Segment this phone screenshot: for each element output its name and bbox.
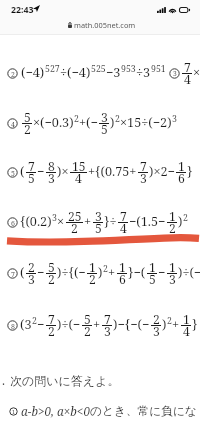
staticText: −: [37, 162, 45, 179]
staticText: 4: [184, 71, 191, 88]
staticText: 5: [95, 220, 102, 237]
staticText: 3: [153, 323, 160, 340]
staticText: 1: [119, 259, 126, 276]
staticText: 5: [28, 170, 35, 187]
staticText: }÷: [104, 212, 117, 229]
staticText: ): [98, 263, 103, 280]
staticText: 8: [11, 321, 15, 331]
staticText: 1: [12, 408, 16, 416]
staticText: 6: [119, 271, 126, 288]
staticText: )÷(−: [178, 263, 200, 280]
staticText: 5: [11, 168, 15, 178]
staticText: ×: [193, 63, 200, 80]
staticText: )÷(−: [57, 315, 81, 332]
staticText: 3: [48, 170, 55, 187]
staticText: 7: [104, 311, 111, 328]
staticText: 7: [11, 269, 15, 279]
staticText: ): [178, 212, 183, 229]
staticText: (−4): [21, 63, 45, 80]
staticText: 2: [74, 113, 79, 125]
button[interactable]: math.005net.com: [0, 17, 200, 34]
staticText: −: [37, 315, 45, 332]
staticText: 5: [24, 109, 31, 126]
staticText: 1: [169, 208, 176, 225]
staticText: 4: [75, 170, 82, 187]
staticText: 2: [48, 271, 55, 288]
staticText: +{(0.75+: [88, 162, 137, 179]
staticText: 1: [169, 259, 176, 276]
staticText: 3: [101, 109, 108, 126]
staticText: +: [172, 315, 180, 332]
staticText: )×: [57, 162, 69, 179]
staticText: −(1.5−: [129, 212, 166, 229]
staticText: 3: [140, 170, 147, 187]
staticText: 1: [89, 259, 96, 276]
staticText: +(−: [79, 113, 98, 130]
staticText: 2: [103, 263, 108, 275]
staticText: ×(−0.3): [33, 113, 74, 130]
staticText: 5: [84, 311, 91, 328]
staticText: 2: [24, 121, 31, 138]
staticText: ÷(−4): [60, 63, 91, 80]
staticText: 1: [183, 311, 190, 328]
staticText: 1: [149, 259, 156, 276]
staticText: 7: [120, 208, 127, 225]
staticText: 2: [32, 315, 37, 327]
staticText: −: [37, 263, 45, 280]
staticText: 6: [178, 170, 185, 187]
staticText: )×2−: [149, 162, 175, 179]
staticText: a−b>0, a×b<0: [21, 403, 90, 419]
staticText: −: [158, 263, 166, 280]
staticText: ): [110, 113, 115, 130]
staticText: ×: [57, 212, 65, 229]
staticText: 3: [172, 113, 177, 125]
staticText: 3: [95, 208, 102, 225]
staticText: 2: [115, 113, 120, 125]
staticText: 525: [91, 63, 106, 75]
staticText: (3: [20, 315, 32, 332]
staticText: +: [93, 315, 101, 332]
staticText: 2: [153, 311, 160, 328]
staticText: 4: [183, 323, 190, 340]
staticText: 3: [104, 323, 111, 340]
staticText: math.005net.com: [74, 20, 136, 30]
staticText: }−(: [128, 263, 146, 280]
staticText: 953: [121, 63, 136, 75]
staticText: 2: [84, 323, 91, 340]
staticText: のとき、常に負にな: [90, 404, 197, 419]
staticText: 1: [178, 158, 185, 175]
staticText: 5: [149, 271, 156, 288]
staticText: +: [108, 263, 116, 280]
staticText: 22:43: [11, 4, 34, 16]
staticText: 2: [11, 69, 15, 79]
staticText: 6: [11, 218, 15, 228]
staticText: −3: [106, 63, 121, 80]
staticText: 2: [71, 220, 78, 237]
staticText: 7: [184, 59, 191, 76]
other: Location: [33, 5, 40, 12]
staticText: {(0.2): [20, 212, 52, 229]
staticText: ×15÷(−2): [120, 113, 172, 130]
staticText: )÷{(−: [57, 263, 86, 280]
staticText: 3: [28, 271, 35, 288]
staticText: }: [192, 315, 198, 332]
staticText: 2: [183, 212, 188, 224]
staticText: 5: [48, 259, 55, 276]
staticText: 8: [48, 158, 55, 175]
staticText: (: [20, 162, 25, 179]
staticText: 2: [89, 271, 96, 288]
staticText: ): [162, 315, 167, 332]
staticText: 527: [45, 63, 60, 75]
staticText: ÷3: [136, 63, 151, 80]
staticText: 2: [167, 315, 172, 327]
staticText: 3: [169, 271, 176, 288]
staticText: .: [2, 372, 6, 388]
staticText: 951: [151, 63, 166, 75]
staticText: +: [84, 212, 92, 229]
staticText: 2: [48, 323, 55, 340]
staticText: 4: [120, 220, 127, 237]
staticText: }: [187, 162, 193, 179]
staticText: 15: [72, 158, 86, 175]
staticText: 2: [169, 220, 176, 237]
staticText: 7: [28, 158, 35, 175]
